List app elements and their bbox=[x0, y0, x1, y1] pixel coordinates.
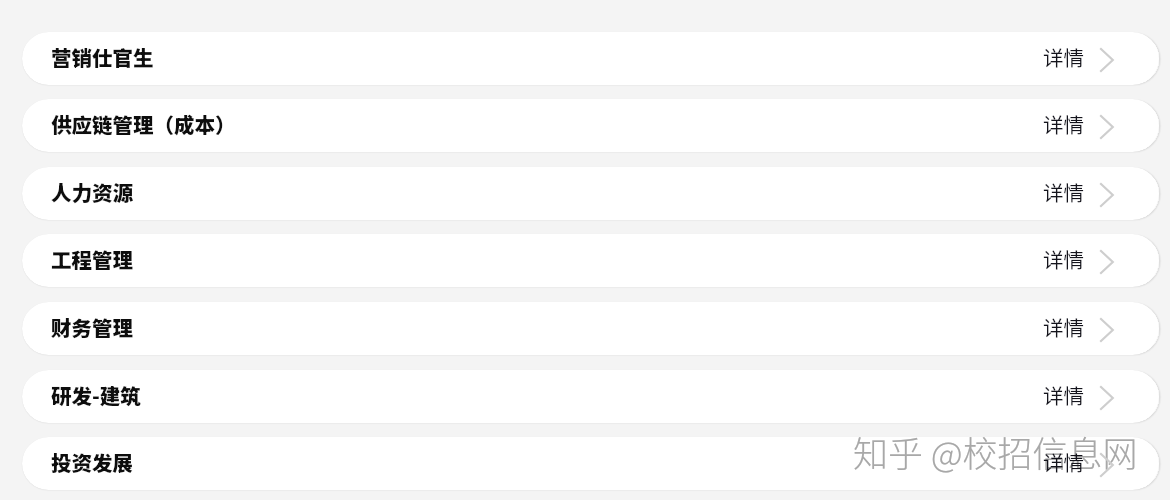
button[interactable]: 供应链管理（成本） bbox=[22, 99, 1159, 152]
other: 查看详情 bbox=[1099, 114, 1114, 140]
other: 查看详情 bbox=[1099, 452, 1114, 478]
staticText: 详情 bbox=[1043, 312, 1084, 342]
other: 查看详情 bbox=[1099, 249, 1114, 275]
staticText: 人力资源 bbox=[51, 177, 133, 207]
staticText: 投资发展 bbox=[51, 447, 133, 477]
button[interactable]: 研发-建筑 bbox=[22, 370, 1159, 423]
staticText: 营销仕官生 bbox=[51, 42, 154, 72]
staticText: 详情 bbox=[1043, 447, 1084, 477]
button[interactable]: 财务管理 bbox=[22, 302, 1159, 355]
staticText: 财务管理 bbox=[51, 312, 133, 342]
staticText: 研发-建筑 bbox=[51, 380, 141, 410]
button[interactable]: 工程管理 bbox=[22, 234, 1159, 287]
other: 查看详情 bbox=[1099, 182, 1114, 208]
staticText: 详情 bbox=[1043, 244, 1084, 274]
staticText: 供应链管理（成本） bbox=[51, 109, 236, 139]
staticText: 知乎 @校招信息网 bbox=[853, 426, 1138, 477]
button[interactable]: 人力资源 bbox=[22, 167, 1159, 220]
staticText: 工程管理 bbox=[51, 244, 133, 274]
other: 查看详情 bbox=[1099, 385, 1114, 411]
button[interactable]: 营销仕官生 bbox=[22, 32, 1159, 85]
other: 查看详情 bbox=[1099, 47, 1114, 73]
staticText: 详情 bbox=[1043, 42, 1084, 72]
staticText: 详情 bbox=[1043, 380, 1084, 410]
staticText: 详情 bbox=[1043, 109, 1084, 139]
other: 查看详情 bbox=[1099, 317, 1114, 343]
button[interactable]: 投资发展 bbox=[22, 437, 1159, 490]
staticText: 详情 bbox=[1043, 177, 1084, 207]
